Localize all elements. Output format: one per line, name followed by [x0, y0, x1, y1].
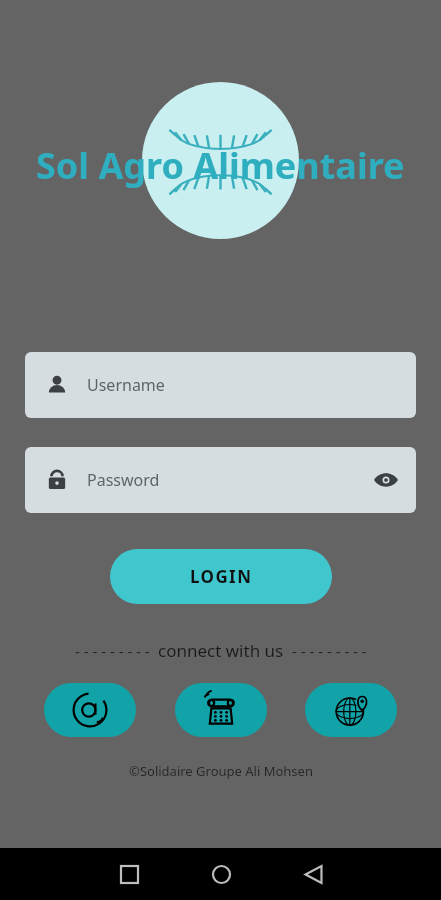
button[interactable]: Home [197, 850, 245, 898]
button[interactable]: Password [25, 447, 416, 513]
staticText: LOGIN [190, 565, 253, 588]
button[interactable]: Recent apps [105, 850, 153, 898]
button[interactable]: Username [25, 352, 416, 418]
button[interactable]: Show password [364, 458, 408, 502]
staticText: Username [87, 374, 165, 396]
button[interactable]: LOGIN [110, 549, 332, 604]
staticText: connect with us [158, 639, 284, 662]
staticText: - - - - - - - - - [292, 641, 367, 661]
staticText: - - - - - - - - - [75, 641, 150, 661]
button[interactable]: Website [305, 683, 397, 737]
staticText: Password [87, 469, 160, 491]
button[interactable]: Back [289, 850, 337, 898]
button[interactable]: Phone [175, 683, 267, 737]
button[interactable]: Email [44, 683, 136, 737]
staticText: ©Solidaire Groupe Ali Mohsen [129, 762, 313, 780]
staticText: Sol Agro Alimentaire [36, 141, 405, 190]
